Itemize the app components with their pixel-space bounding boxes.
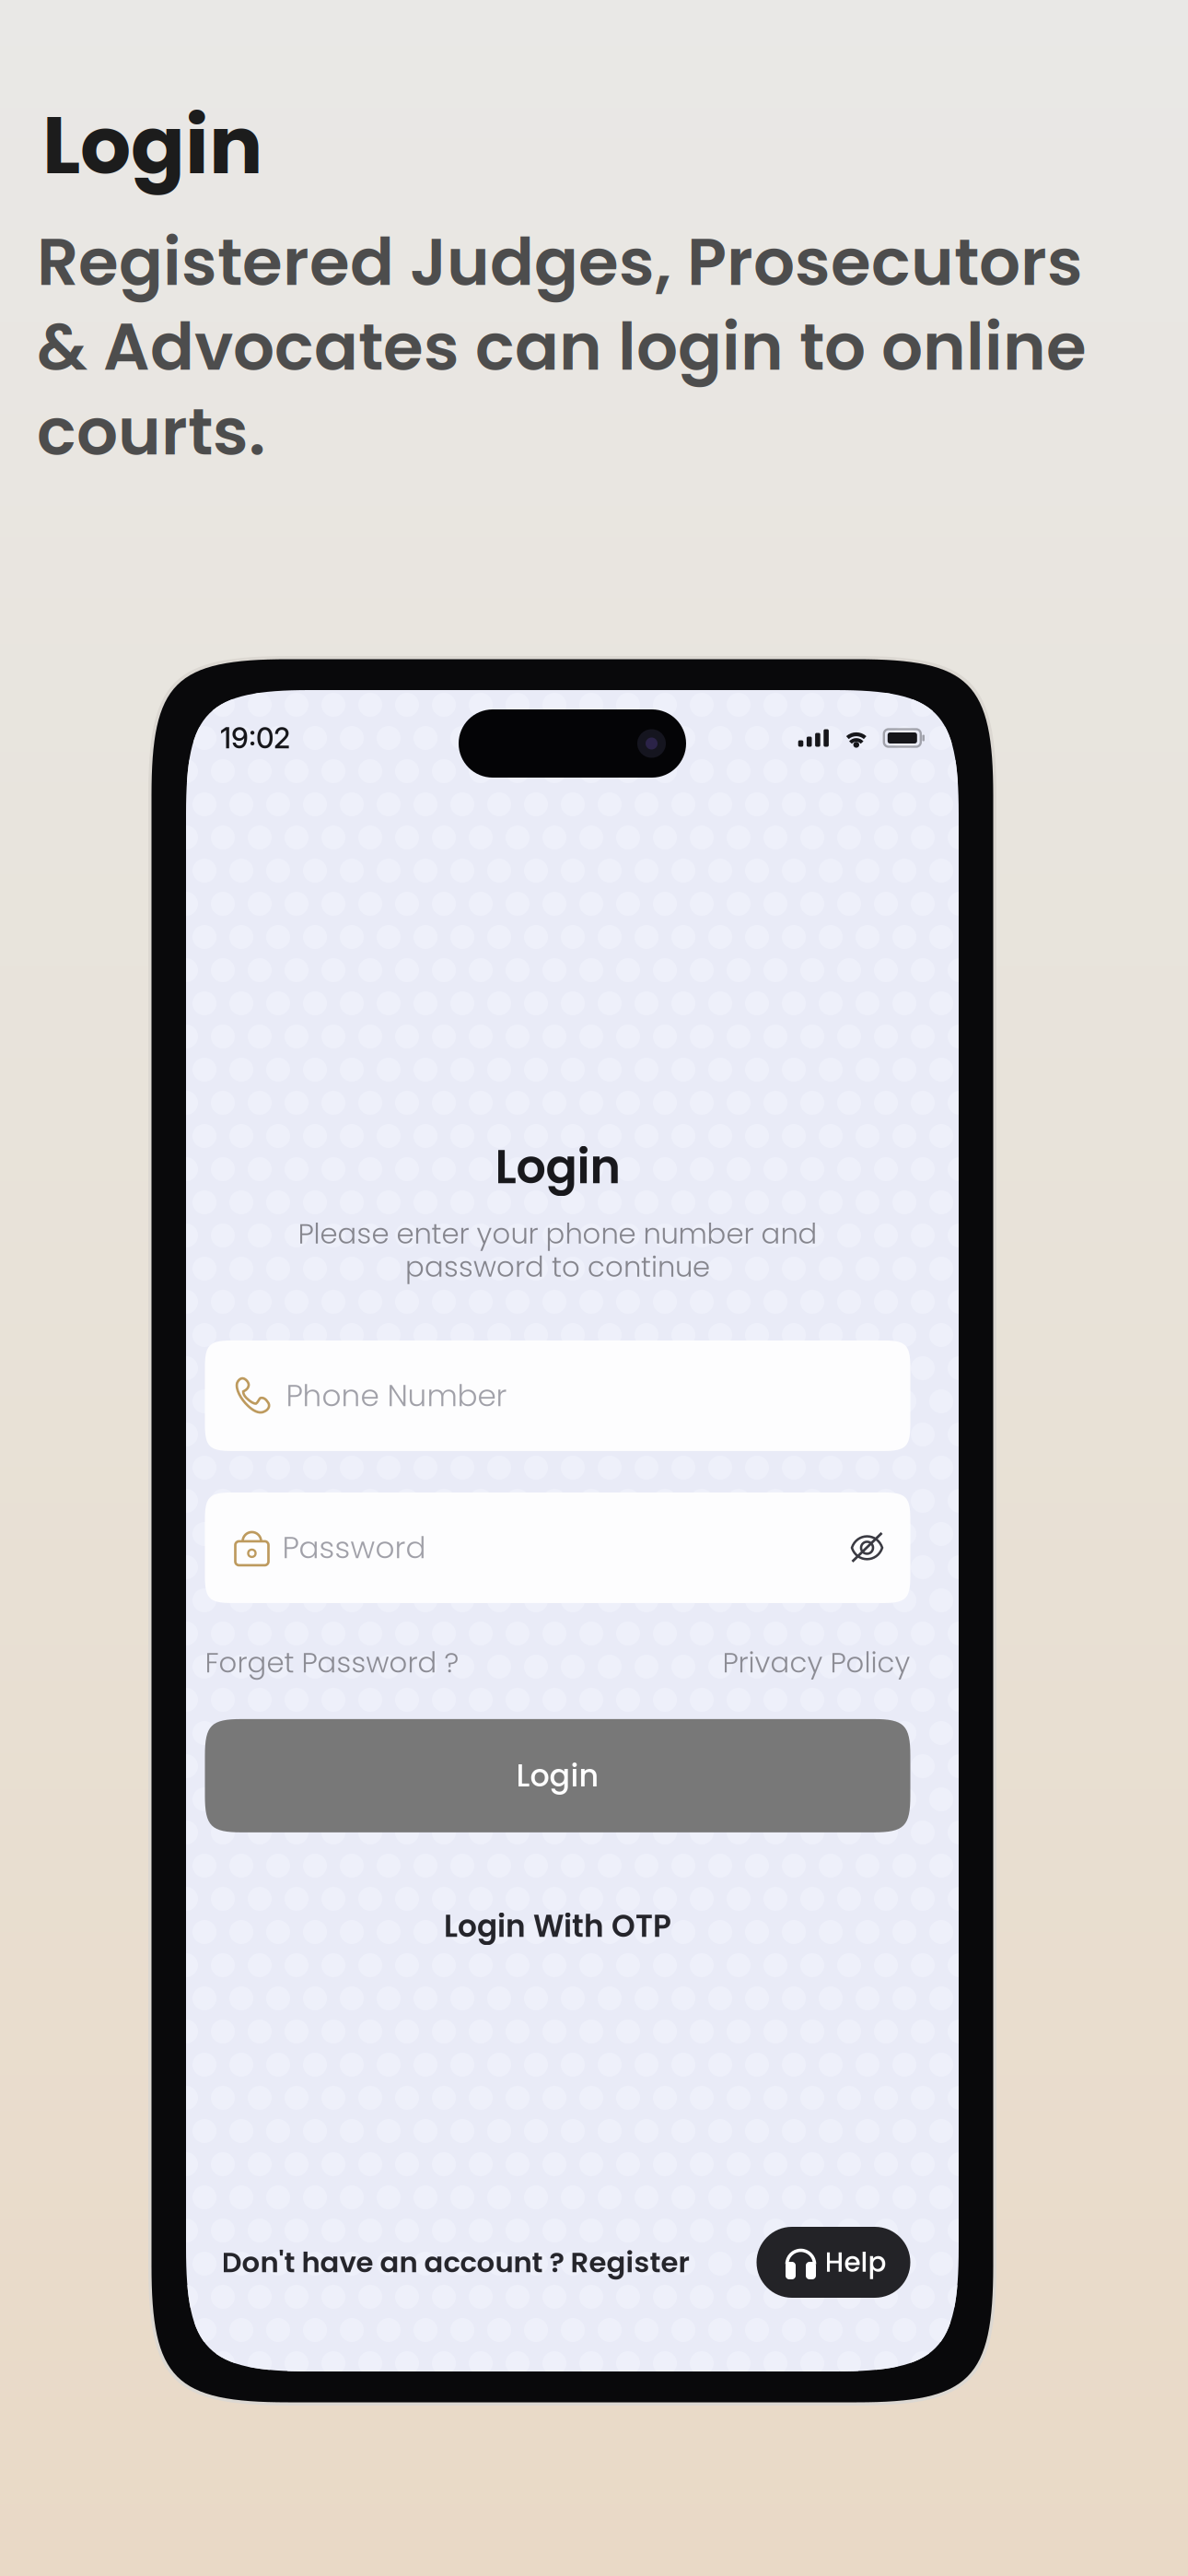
button[interactable]: Password (205, 1492, 910, 1603)
staticText: Login With OTP (444, 1905, 671, 1947)
staticText: 19:02 (220, 721, 290, 755)
staticText: & Advocates can login to online (37, 301, 1087, 392)
staticText: Registered Judges, Prosecutors (37, 217, 1083, 308)
button[interactable]: Forget Password ? (205, 1643, 459, 1682)
staticText: Login (495, 1134, 620, 1199)
staticText: Don't have an account ? Register (221, 2242, 689, 2282)
staticText: Phone Number (286, 1375, 507, 1417)
staticText: Help (825, 2243, 886, 2281)
button[interactable]: Privacy Policy (722, 1643, 910, 1682)
button[interactable]: Login With OTP (444, 1905, 671, 1947)
button[interactable]: Help (757, 2227, 910, 2298)
staticText: password to continue (405, 1247, 710, 1287)
staticText: Please enter your phone number and (298, 1214, 817, 1253)
button[interactable]: Phone Number (205, 1340, 910, 1451)
button[interactable]: Don't have an account ? Register (221, 2242, 689, 2282)
button[interactable]: Login (205, 1719, 910, 1832)
staticText: Login (42, 89, 262, 201)
staticText: courts. (37, 386, 265, 477)
staticText: Login (516, 1754, 599, 1797)
staticText: Password (282, 1527, 426, 1569)
staticText: Forget Password ? (205, 1643, 459, 1682)
staticText: Privacy Policy (722, 1643, 910, 1682)
